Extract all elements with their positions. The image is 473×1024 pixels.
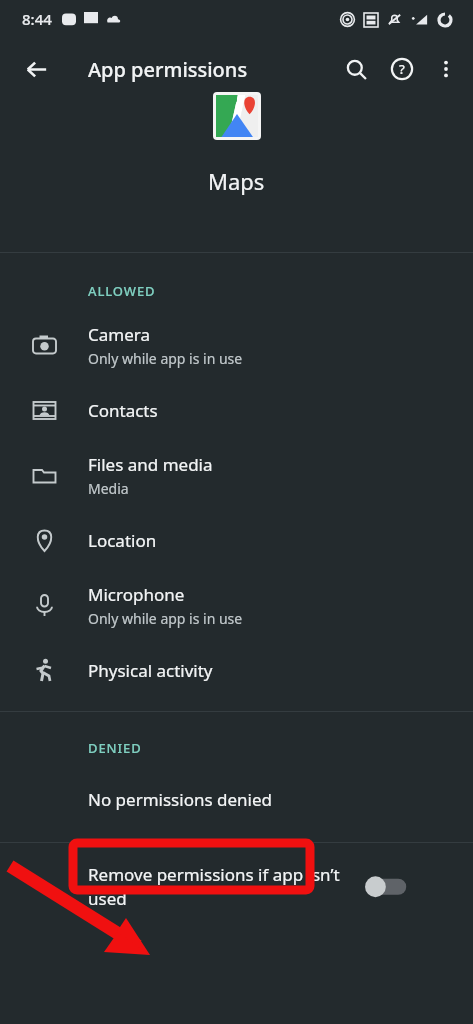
- staticText: Media: [88, 479, 129, 498]
- staticText: DENIED: [88, 739, 142, 757]
- staticText: Only while app is in use: [88, 609, 243, 628]
- button[interactable]: Physical activity: [0, 639, 473, 701]
- staticText: Camera: [88, 323, 150, 346]
- staticText: App permissions: [88, 56, 248, 83]
- button[interactable]: Camera: [0, 311, 473, 379]
- button[interactable]: No permissions denied: [0, 768, 473, 830]
- button[interactable]: Help: [379, 46, 425, 92]
- staticText: Location: [88, 529, 157, 552]
- staticText: Microphone: [88, 583, 185, 606]
- button[interactable]: Remove permissions toggle: [364, 874, 408, 900]
- staticText: Files and media: [88, 453, 213, 476]
- button[interactable]: More options: [425, 48, 467, 90]
- button[interactable]: Microphone: [0, 571, 473, 639]
- staticText: Remove permissions if app isn’t used: [88, 863, 356, 910]
- staticText: Physical activity: [88, 659, 213, 682]
- button[interactable]: Back: [12, 45, 60, 93]
- button[interactable]: Search: [333, 46, 379, 92]
- staticText: ALLOWED: [88, 282, 156, 300]
- staticText: 8:44: [22, 9, 52, 29]
- staticText: Contacts: [88, 399, 158, 422]
- staticText: ?: [399, 60, 405, 78]
- staticText: Only while app is in use: [88, 349, 243, 368]
- staticText: No permissions denied: [88, 788, 272, 811]
- button[interactable]: Contacts: [0, 379, 473, 441]
- staticText: Maps: [208, 166, 265, 196]
- button[interactable]: Remove permissions if app isn’t used: [0, 863, 473, 910]
- button[interactable]: Files and media: [0, 441, 473, 509]
- button[interactable]: Location: [0, 509, 473, 571]
